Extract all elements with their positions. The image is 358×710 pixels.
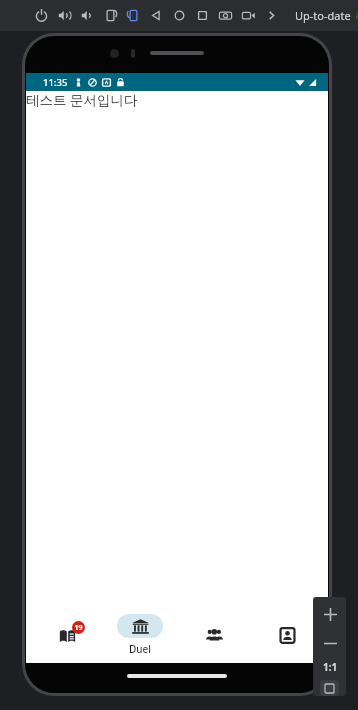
button[interactable]: Groups — [181, 606, 247, 663]
button[interactable]: Profile — [254, 606, 320, 663]
staticText: Duel — [129, 642, 152, 656]
staticText: Up-to-date — [295, 8, 351, 23]
button[interactable]: Home — [168, 4, 191, 27]
button[interactable]: More — [260, 4, 283, 27]
staticText: 1:1 — [323, 660, 338, 674]
button[interactable]: Rotate right — [122, 4, 145, 27]
button[interactable]: Overview — [191, 4, 214, 27]
staticText: 19 — [74, 623, 83, 633]
button[interactable]: Screenshot — [214, 4, 237, 27]
button[interactable]: 1:1 — [320, 657, 340, 677]
button[interactable]: Volume down — [76, 4, 99, 27]
button[interactable]: Power — [30, 4, 53, 27]
button[interactable]: Stories, 19 unread — [34, 606, 100, 663]
button[interactable]: Duel — [107, 606, 173, 663]
button[interactable]: Back — [145, 4, 168, 27]
button[interactable]: Zoom out — [318, 631, 342, 655]
button[interactable]: Fit to window — [320, 680, 339, 696]
staticText: 11:35 — [43, 76, 68, 89]
button[interactable]: Record screen — [237, 4, 260, 27]
button[interactable]: Zoom in — [317, 601, 343, 627]
staticText: 테스트 문서입니다 — [26, 91, 138, 109]
button[interactable]: Rotate left — [99, 4, 122, 27]
button[interactable]: Volume up — [53, 4, 76, 27]
